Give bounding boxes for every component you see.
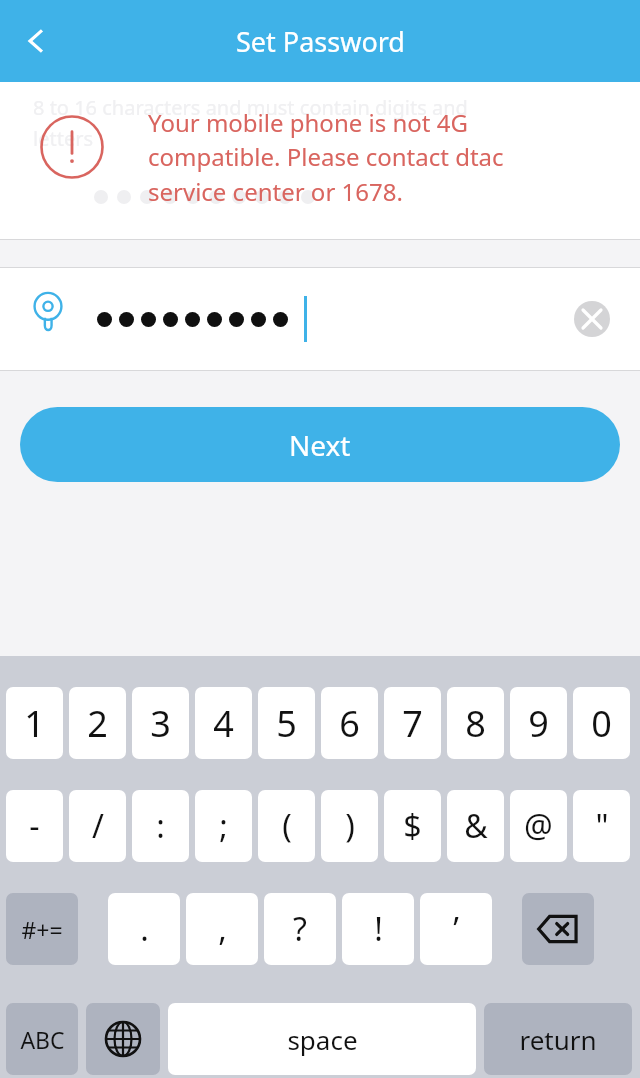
button[interactable]: Clear xyxy=(574,301,610,337)
staticText: ; xyxy=(219,804,228,848)
button[interactable]: 6 xyxy=(321,687,378,759)
button[interactable]: 9 xyxy=(510,687,567,759)
button[interactable]: 0 xyxy=(573,687,630,759)
staticText: 0 xyxy=(591,699,612,748)
button[interactable]: ! xyxy=(342,893,414,965)
staticText: 5 xyxy=(276,699,297,748)
staticText: : xyxy=(156,804,165,848)
button[interactable]: , xyxy=(186,893,258,965)
staticText: Set Password xyxy=(236,23,405,60)
staticText: 8 xyxy=(465,699,486,748)
button[interactable]: 8 xyxy=(447,687,504,759)
staticText: ( xyxy=(282,804,292,848)
staticText: ) xyxy=(345,804,355,848)
button[interactable]: Back xyxy=(8,13,64,69)
staticText: @ xyxy=(524,804,553,848)
staticText: & xyxy=(464,804,488,848)
staticText: #+= xyxy=(21,914,63,945)
staticText: 8 to 16 characters and must contain digi… xyxy=(33,94,468,151)
button[interactable]: 7 xyxy=(384,687,441,759)
button[interactable]: Backspace xyxy=(522,893,594,965)
button[interactable]: " xyxy=(573,790,630,862)
staticText: / xyxy=(92,804,104,848)
staticText: $ xyxy=(403,804,422,848)
staticText: " xyxy=(595,804,609,848)
button[interactable]: @ xyxy=(510,790,567,862)
staticText: 3 xyxy=(150,699,171,748)
button[interactable]: : xyxy=(132,790,189,862)
staticText: 7 xyxy=(402,699,423,748)
staticText: Your mobile phone is not 4G compatible. … xyxy=(148,106,504,209)
staticText: ABC xyxy=(20,1024,65,1055)
button[interactable]: 3 xyxy=(132,687,189,759)
staticText: 1 xyxy=(24,699,45,748)
staticText: 4 xyxy=(213,699,234,748)
button[interactable]: ? xyxy=(264,893,336,965)
staticText: . xyxy=(140,907,149,951)
button[interactable]: return xyxy=(484,1003,632,1075)
button[interactable]: / xyxy=(69,790,126,862)
button[interactable]: - xyxy=(6,790,63,862)
button[interactable]: 2 xyxy=(69,687,126,759)
staticText: return xyxy=(519,1022,597,1057)
button[interactable]: #+= xyxy=(6,893,78,965)
staticText: Next xyxy=(289,426,351,464)
staticText: space xyxy=(287,1022,358,1057)
button[interactable]: 4 xyxy=(195,687,252,759)
button[interactable]: Next xyxy=(20,407,620,482)
staticText: 2 xyxy=(87,699,108,748)
button[interactable]: & xyxy=(447,790,504,862)
button[interactable]: Change keyboard language xyxy=(86,1003,160,1075)
staticText: , xyxy=(218,907,227,951)
staticText: - xyxy=(29,804,40,848)
staticText: ’ xyxy=(453,907,459,951)
button[interactable]: ’ xyxy=(420,893,492,965)
button[interactable]: ( xyxy=(258,790,315,862)
button[interactable]: ABC xyxy=(6,1003,78,1075)
button[interactable]: 1 xyxy=(6,687,63,759)
staticText: ! xyxy=(374,907,383,951)
button[interactable]: . xyxy=(108,893,180,965)
button[interactable]: space xyxy=(168,1003,476,1075)
button[interactable]: ) xyxy=(321,790,378,862)
button[interactable]: $ xyxy=(384,790,441,862)
staticText: 9 xyxy=(528,699,549,748)
staticText: ? xyxy=(293,907,307,951)
button[interactable]: ; xyxy=(195,790,252,862)
button[interactable]: 5 xyxy=(258,687,315,759)
button[interactable]: Clear xyxy=(0,267,640,371)
staticText: 6 xyxy=(339,699,360,748)
